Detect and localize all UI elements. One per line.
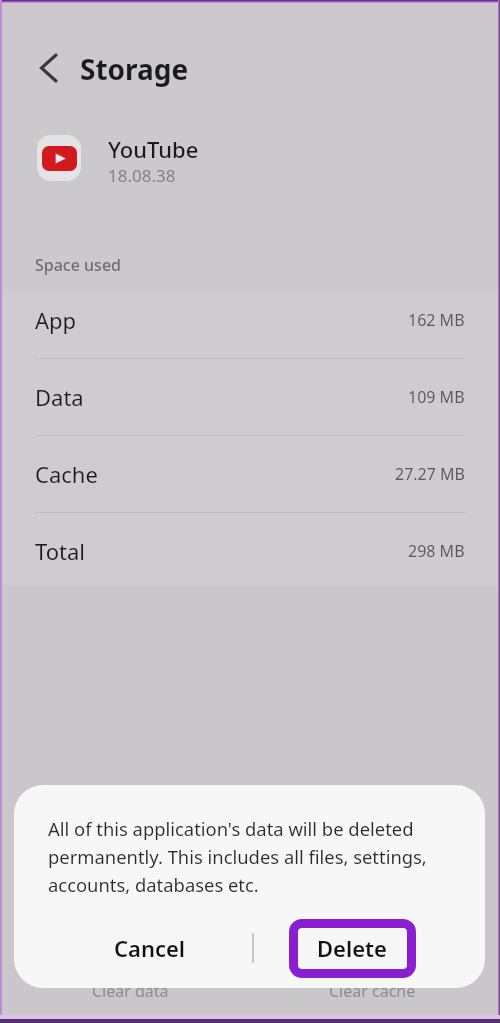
- staticText: Storage: [80, 50, 189, 88]
- button[interactable]: Data: [35, 380, 465, 414]
- staticText: 18.08.38: [108, 164, 176, 187]
- staticText: 109 MB: [408, 386, 465, 408]
- staticText: 27.27 MB: [395, 463, 465, 485]
- staticText: Cancel: [114, 933, 186, 963]
- staticText: accounts, databases etc.: [48, 872, 259, 897]
- staticText: Data: [35, 382, 84, 412]
- staticText: Total: [35, 536, 85, 566]
- staticText: YouTube: [108, 134, 199, 164]
- staticText: All of this application's data will be d…: [48, 816, 414, 841]
- staticText: permanently. This includes all files, se…: [48, 844, 427, 869]
- button[interactable]: Total: [35, 534, 465, 568]
- button[interactable]: Delete: [277, 923, 427, 973]
- staticText: Clear cache: [329, 980, 416, 1002]
- button[interactable]: Cancel: [75, 923, 225, 973]
- staticText: Cache: [35, 459, 98, 489]
- button[interactable]: Cache: [35, 457, 465, 491]
- staticText: App: [35, 305, 77, 335]
- button[interactable]: App: [35, 303, 465, 337]
- staticText: Clear data: [92, 980, 169, 1002]
- staticText: Delete: [317, 933, 387, 963]
- staticText: 162 MB: [408, 309, 465, 331]
- button[interactable]: Clear cache: [302, 975, 442, 1023]
- button[interactable]: [37, 135, 81, 181]
- button[interactable]: Clear data: [60, 975, 200, 1023]
- staticText: 298 MB: [408, 540, 465, 562]
- staticText: Space used: [35, 254, 121, 276]
- button[interactable]: [28, 48, 68, 88]
